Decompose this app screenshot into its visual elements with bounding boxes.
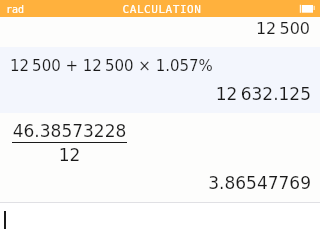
- button[interactable]: 12 500 + 12 500 × 1.057%: [0, 47, 320, 113]
- button[interactable]: 12 500: [0, 17, 320, 47]
- staticText: CALCULATION: [2, 3, 320, 16]
- staticText: rad: [6, 4, 25, 16]
- staticText: 12 500: [0, 19, 310, 38]
- staticText: 12: [12, 145, 127, 165]
- staticText: 12 500 + 12 500 × 1.057%: [10, 57, 213, 74]
- staticText: 46.38573228: [12, 121, 127, 141]
- staticText: 12 632.125: [0, 84, 311, 104]
- other: Battery: [299, 4, 315, 13]
- staticText: 3.86547769: [0, 173, 311, 193]
- button[interactable]: [0, 203, 320, 239]
- button[interactable]: 46.38573228: [0, 113, 320, 202]
